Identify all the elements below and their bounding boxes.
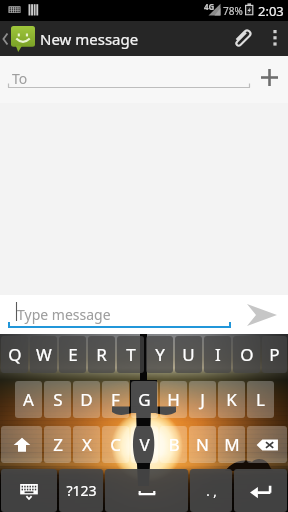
staticText: D (80, 388, 93, 411)
button[interactable]: Add recipient (250, 58, 288, 96)
staticText: L (256, 388, 265, 411)
staticText: U (182, 343, 195, 366)
button[interactable]: K (218, 381, 245, 418)
staticText: V (139, 433, 150, 456)
button[interactable]: Space (105, 469, 188, 512)
staticText: G (138, 388, 151, 411)
button[interactable]: . , (190, 469, 232, 512)
button[interactable]: R (88, 336, 115, 373)
button[interactable]: S (44, 381, 71, 418)
staticText: M (224, 433, 240, 456)
button[interactable]: Attach (220, 21, 262, 56)
button[interactable]: C (102, 426, 129, 463)
button[interactable]: B (160, 426, 187, 463)
staticText: A (23, 388, 34, 411)
button[interactable]: Switch keyboard (1, 469, 57, 512)
staticText: 2:03 (258, 2, 284, 20)
button[interactable]: M (218, 426, 245, 463)
button[interactable]: L (247, 381, 274, 418)
button[interactable]: V (131, 426, 158, 463)
staticText: S (53, 388, 63, 411)
button[interactable]: ?123 (59, 469, 103, 512)
button[interactable]: Shift (1, 426, 42, 463)
button[interactable]: T (117, 336, 144, 373)
staticText: 4G (204, 1, 215, 12)
button[interactable]: Q (1, 336, 28, 373)
button[interactable]: I (204, 336, 231, 373)
button[interactable]: New message (0, 21, 140, 56)
staticText: K (226, 388, 237, 411)
button[interactable]: E (59, 336, 86, 373)
button[interactable]: J (189, 381, 216, 418)
staticText: . , (206, 482, 217, 500)
staticText: H (167, 388, 180, 411)
button[interactable]: W (30, 336, 57, 373)
button[interactable]: U (175, 336, 202, 373)
staticText: I (215, 343, 221, 366)
button[interactable]: O (233, 336, 260, 373)
button[interactable]: Send (236, 295, 288, 334)
button[interactable]: N (189, 426, 216, 463)
staticText: O (240, 343, 254, 366)
button[interactable]: A (15, 381, 42, 418)
staticText: Type message (17, 305, 111, 324)
button[interactable]: G (131, 381, 158, 418)
staticText: Q (8, 343, 22, 366)
button[interactable]: Enter (234, 469, 287, 512)
staticText: ?123 (66, 481, 97, 500)
button[interactable]: P (262, 336, 287, 373)
staticText: New message (40, 29, 139, 49)
staticText: B (168, 433, 180, 456)
button[interactable]: F (102, 381, 129, 418)
button[interactable]: Backspace (247, 426, 287, 463)
staticText: W (36, 343, 52, 366)
button[interactable]: Type message (0, 295, 236, 334)
button[interactable]: Y (146, 336, 173, 373)
staticText: F (111, 388, 120, 411)
button[interactable]: Z (44, 426, 71, 463)
staticText: C (110, 433, 121, 456)
button[interactable]: D (73, 381, 100, 418)
staticText: X (82, 433, 92, 456)
staticText: J (200, 388, 205, 411)
staticText: T (126, 343, 136, 366)
button[interactable]: X (73, 426, 100, 463)
staticText: R (96, 343, 107, 366)
button[interactable]: To (0, 56, 248, 103)
staticText: P (269, 343, 280, 366)
staticText: N (196, 433, 209, 456)
button[interactable]: More options (262, 21, 288, 56)
staticText: Y (155, 343, 165, 366)
staticText: E (68, 343, 78, 366)
staticText: Z (53, 433, 63, 456)
staticText: To (12, 69, 28, 88)
button[interactable]: H (160, 381, 187, 418)
staticText: 78% (223, 4, 243, 18)
